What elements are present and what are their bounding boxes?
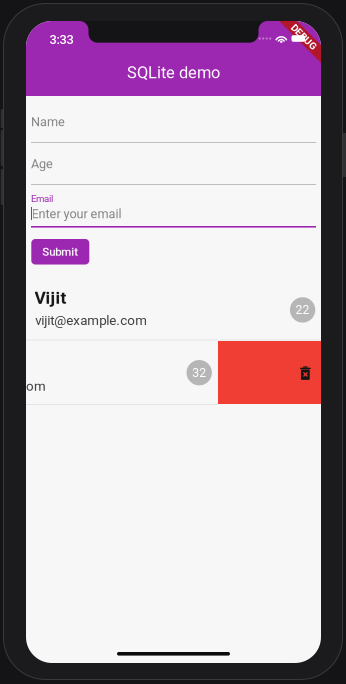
staticText: 22 <box>296 303 310 317</box>
button[interactable]: om <box>26 341 218 404</box>
button[interactable]: Submit <box>31 239 89 264</box>
button[interactable]: Delete <box>218 341 321 404</box>
staticText: SQLite demo <box>127 63 220 82</box>
staticText: 32 <box>192 365 206 380</box>
button[interactable]: Email <box>26 193 321 228</box>
staticText: Age <box>31 156 53 171</box>
staticText: vijit@example.com <box>35 313 147 328</box>
staticText: Name <box>31 114 65 129</box>
staticText: 3:33 <box>49 32 73 47</box>
button[interactable]: Age <box>26 152 321 185</box>
staticText: Submit <box>42 245 78 258</box>
staticText: DEBUG <box>288 31 320 43</box>
staticText: Enter your email <box>31 207 121 221</box>
staticText: Email <box>31 193 53 204</box>
staticText: om <box>26 378 46 394</box>
staticText: Vijit <box>35 288 67 308</box>
button[interactable]: Vijit <box>26 280 321 340</box>
button[interactable]: Name <box>26 110 321 143</box>
